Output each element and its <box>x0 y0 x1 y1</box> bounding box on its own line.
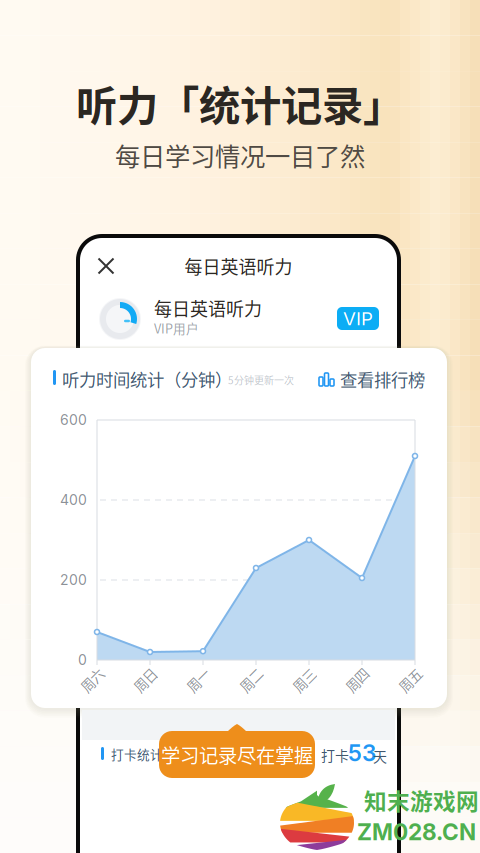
staticText: 周一 <box>185 670 211 690</box>
staticText: 200 <box>60 571 87 588</box>
staticText: 每日英语听力 <box>184 253 292 279</box>
staticText: 打卡统计 <box>111 745 163 763</box>
staticText: 周五 <box>397 670 423 690</box>
staticText: VIP <box>343 307 373 330</box>
staticText: 查看排行榜 <box>340 366 425 392</box>
staticText: 天 <box>373 746 387 766</box>
staticText: 周六 <box>79 670 105 690</box>
staticText: 每日学习情况一目了然 <box>115 137 365 173</box>
staticText: ZM028.CN <box>357 818 476 846</box>
staticText: 周日 <box>132 670 158 690</box>
staticText: 听力时间统计（分钟） <box>62 366 232 392</box>
staticText: 每日英语听力 <box>154 295 262 321</box>
staticText: 400 <box>60 491 87 508</box>
staticText: VIP用户 <box>154 319 199 337</box>
staticText: 周四 <box>344 670 370 690</box>
staticText: 知末游戏网 <box>364 784 479 816</box>
button[interactable]: Close <box>89 251 123 281</box>
staticText: 600 <box>60 411 87 428</box>
staticText: 周二 <box>238 670 264 690</box>
staticText: 打卡 <box>321 745 349 765</box>
staticText: 5分钟更新一次 <box>228 373 294 387</box>
button[interactable]: VIP <box>337 307 379 330</box>
staticText: 听力「统计记录」 <box>76 73 404 133</box>
button[interactable]: 查看排行榜 <box>319 368 441 390</box>
staticText: 学习记录尽在掌握 <box>161 740 313 768</box>
staticText: 0 <box>78 651 87 668</box>
staticText: 53 <box>348 739 376 767</box>
staticText: 周三 <box>291 670 317 690</box>
